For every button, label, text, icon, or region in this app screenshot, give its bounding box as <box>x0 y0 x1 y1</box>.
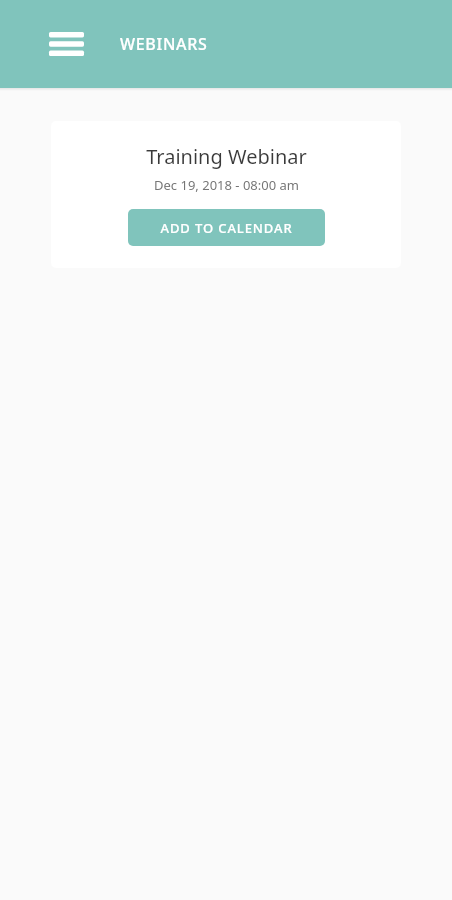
button[interactable]: Training Webinar <box>51 121 401 268</box>
staticText: WEBINARS <box>120 33 208 55</box>
staticText: ADD TO CALENDAR <box>160 219 293 237</box>
button[interactable]: Open navigation menu <box>40 22 92 66</box>
staticText: Training Webinar <box>146 143 307 170</box>
staticText: Dec 19, 2018 - 08:00 am <box>154 176 299 194</box>
button[interactable]: ADD TO CALENDAR <box>128 209 325 246</box>
